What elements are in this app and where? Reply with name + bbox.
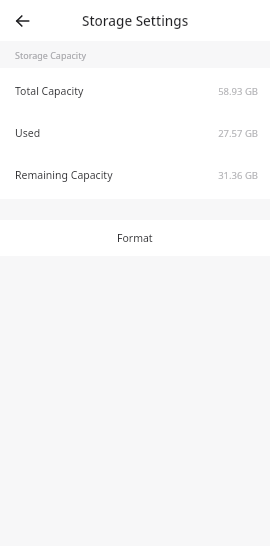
button[interactable]: Total Capacity	[0, 70, 270, 112]
staticText: 31.36 GB	[218, 169, 258, 182]
staticText: Used	[15, 126, 218, 140]
staticText: Total Capacity	[15, 84, 218, 98]
staticText: Remaining Capacity	[15, 168, 218, 182]
button[interactable]: Remaining Capacity	[0, 154, 270, 196]
staticText: 58.93 GB	[218, 85, 258, 98]
staticText: 27.57 GB	[218, 127, 258, 140]
staticText: Storage Settings	[82, 12, 189, 30]
button[interactable]: Back	[8, 7, 36, 35]
staticText: Storage Capacity	[15, 49, 86, 61]
button[interactable]: Format	[0, 220, 270, 256]
button[interactable]: Used	[0, 112, 270, 154]
staticText: Format	[117, 231, 153, 245]
